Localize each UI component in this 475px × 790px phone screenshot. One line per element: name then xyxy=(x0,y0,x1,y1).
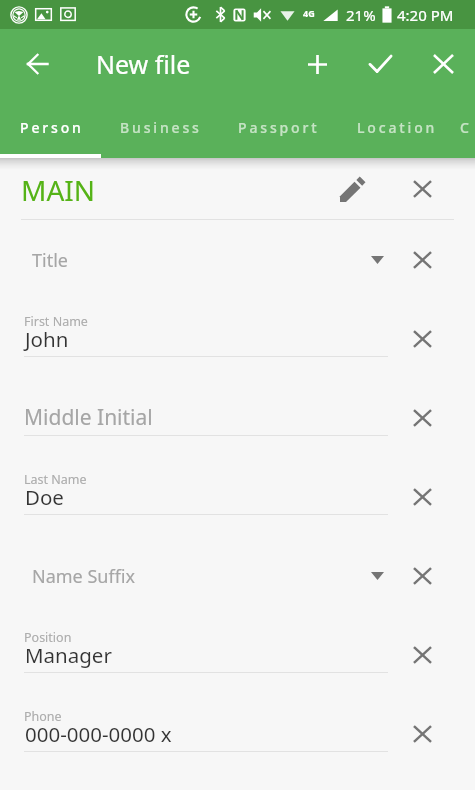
button[interactable]: Open Name Suffix options xyxy=(362,561,392,591)
button[interactable]: Edit section xyxy=(330,167,374,211)
staticText: First Name xyxy=(24,313,88,330)
button[interactable]: C xyxy=(455,100,475,158)
staticText: Middle Initial xyxy=(24,403,153,432)
staticText: New file xyxy=(96,47,191,81)
button[interactable]: Title xyxy=(0,220,475,299)
staticText: Phone xyxy=(24,708,62,725)
button[interactable]: First Name xyxy=(0,299,475,378)
staticText: Doe xyxy=(25,483,64,511)
staticText: Location xyxy=(357,118,438,137)
staticText: Business xyxy=(120,118,202,137)
button[interactable]: Clear Position xyxy=(400,633,444,677)
button[interactable]: Save xyxy=(356,40,404,88)
button[interactable]: Last Name xyxy=(0,457,475,536)
button[interactable]: Navigate up xyxy=(13,40,61,88)
staticText: 000-000-0000 x xyxy=(25,720,172,748)
staticText: 21% xyxy=(346,5,376,25)
button[interactable]: Middle Initial xyxy=(0,378,475,457)
button[interactable]: Business xyxy=(101,100,219,158)
staticText: Last Name xyxy=(24,471,87,488)
staticText: 4:20 PM xyxy=(397,5,454,25)
staticText: Passport xyxy=(238,118,320,137)
button[interactable]: Clear First Name xyxy=(400,317,444,361)
button[interactable]: Passport xyxy=(219,100,337,158)
staticText: C xyxy=(460,118,472,137)
button[interactable]: Phone xyxy=(0,694,475,773)
button[interactable]: Open Title options xyxy=(362,245,392,275)
button[interactable]: Close xyxy=(419,40,467,88)
button[interactable]: Name Suffix xyxy=(0,536,475,615)
button[interactable]: Add xyxy=(293,40,341,88)
staticText: John xyxy=(25,325,69,353)
staticText: Person xyxy=(20,118,84,137)
button[interactable]: Clear Name Suffix xyxy=(400,554,444,598)
staticText: Position xyxy=(24,629,72,646)
button[interactable]: Person xyxy=(0,100,101,158)
staticText: Name Suffix xyxy=(32,564,135,589)
staticText: 4G xyxy=(303,7,315,19)
staticText: Manager xyxy=(25,641,112,669)
button[interactable]: Clear Middle Initial xyxy=(400,396,444,440)
button[interactable]: Location xyxy=(337,100,455,158)
button[interactable]: Position xyxy=(0,615,475,694)
staticText: MAIN xyxy=(21,171,96,209)
button[interactable]: Remove section xyxy=(400,167,444,211)
button[interactable]: Clear Phone xyxy=(400,712,444,756)
staticText: Title xyxy=(32,248,68,273)
button[interactable]: Clear Last Name xyxy=(400,475,444,519)
button[interactable]: Clear Title xyxy=(400,238,444,282)
